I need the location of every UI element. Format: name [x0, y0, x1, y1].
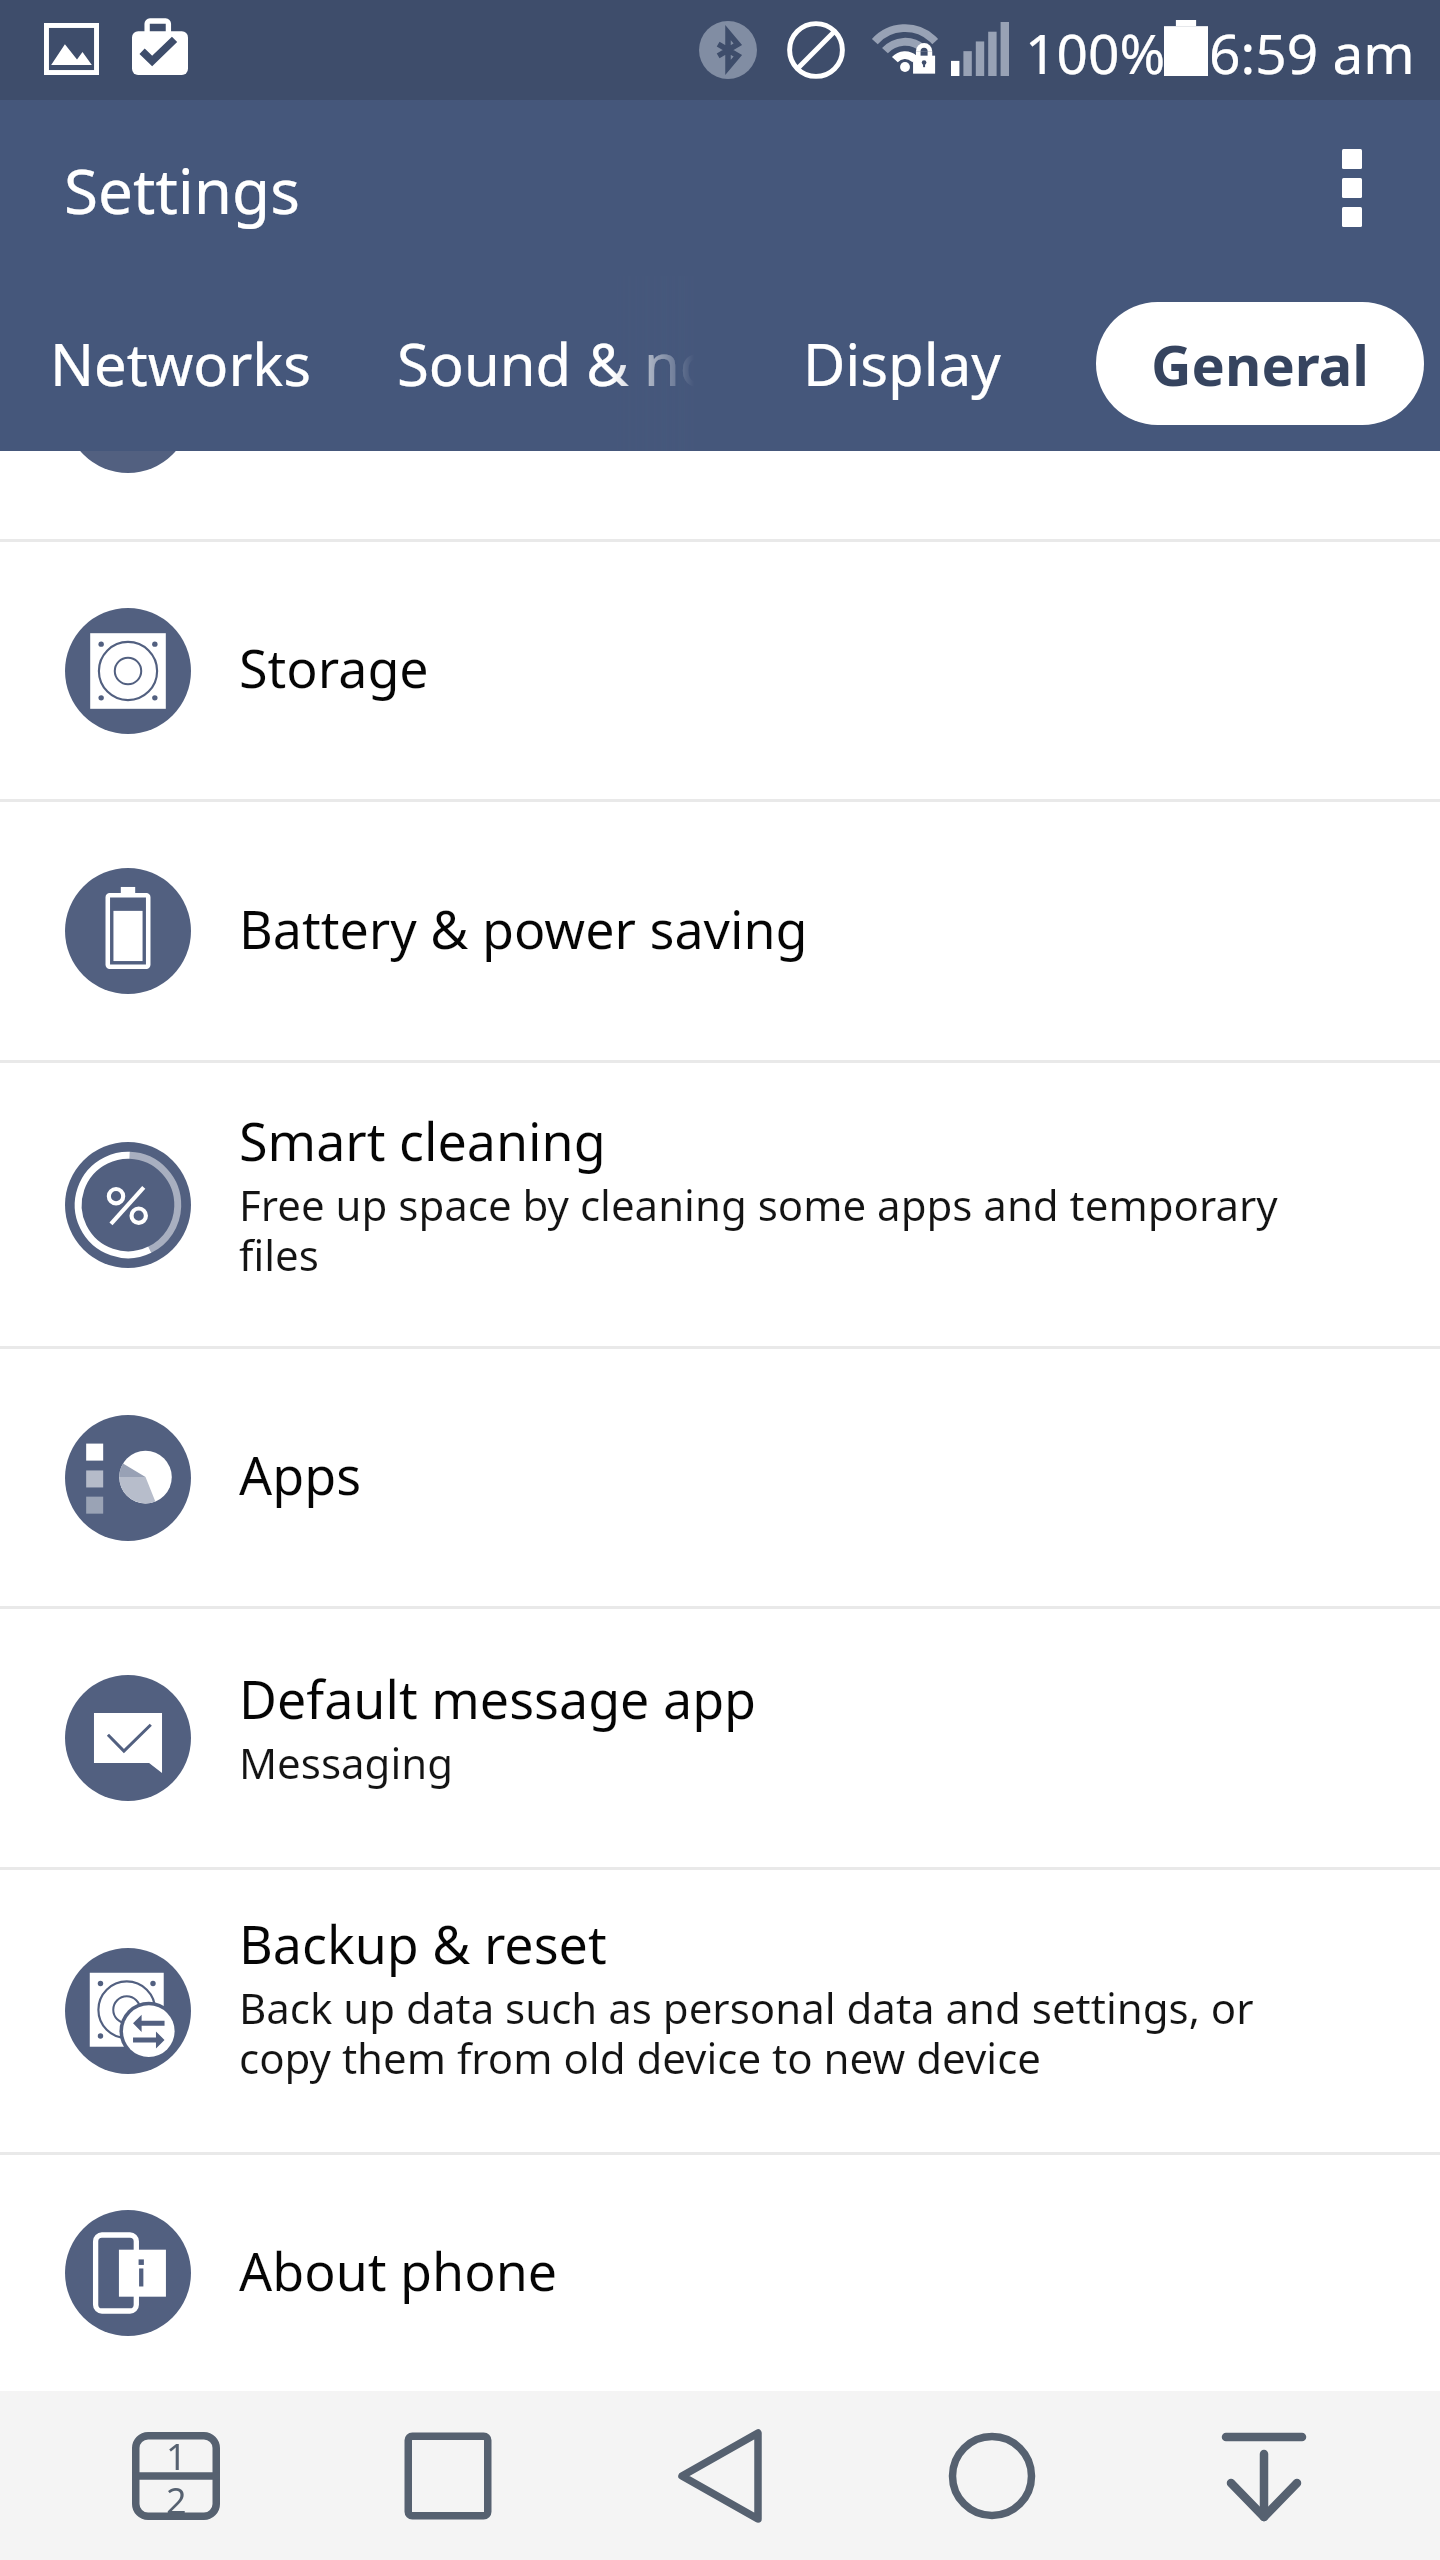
- button[interactable]: Recent apps: [312, 2391, 584, 2560]
- button[interactable]: More options: [1292, 128, 1412, 248]
- staticText: Apps: [239, 1439, 362, 1510]
- button[interactable]: Battery & power saving: [0, 802, 1440, 1060]
- staticText: General: [1151, 326, 1369, 402]
- staticText: Free up space by cleaning some apps and …: [239, 1176, 1290, 1284]
- staticText: Smart cleaning: [239, 1105, 606, 1176]
- staticText: Networks: [50, 324, 312, 403]
- button[interactable]: Backup & reset: [0, 1870, 1440, 2152]
- staticText: Backup & reset: [239, 1908, 607, 1979]
- button[interactable]: General: [1096, 302, 1424, 425]
- staticText: Settings: [64, 148, 300, 232]
- staticText: About phone: [239, 2235, 558, 2306]
- staticText: Back up data such as personal data and s…: [239, 1979, 1290, 2087]
- button[interactable]: Networks: [0, 276, 362, 451]
- staticText: Battery & power saving: [239, 893, 808, 964]
- staticText: 100%: [1025, 15, 1166, 90]
- staticText: Messaging: [239, 1734, 454, 1791]
- button[interactable]: Home: [856, 2391, 1128, 2560]
- button[interactable]: Apps: [0, 1349, 1440, 1606]
- staticText: 1: [166, 2432, 187, 2476]
- staticText: 2: [166, 2476, 187, 2520]
- staticText: 6:59 am: [1209, 15, 1415, 90]
- button[interactable]: Default message app: [0, 1609, 1440, 1867]
- staticText: Default message app: [239, 1663, 757, 1734]
- button[interactable]: Split screen: [40, 2391, 312, 2560]
- button[interactable]: Back: [584, 2391, 856, 2560]
- button[interactable]: Hide navigation bar: [1128, 2391, 1400, 2560]
- button[interactable]: Display: [757, 276, 1047, 451]
- staticText: Storage: [239, 632, 429, 703]
- button[interactable]: Sound & notification: [397, 276, 694, 451]
- button[interactable]: Storage: [0, 542, 1440, 799]
- staticText: Sound & notification: [397, 324, 694, 403]
- button[interactable]: Smart cleaning: [0, 1063, 1440, 1346]
- button[interactable]: About phone: [0, 2155, 1440, 2391]
- staticText: Display: [803, 324, 1001, 403]
